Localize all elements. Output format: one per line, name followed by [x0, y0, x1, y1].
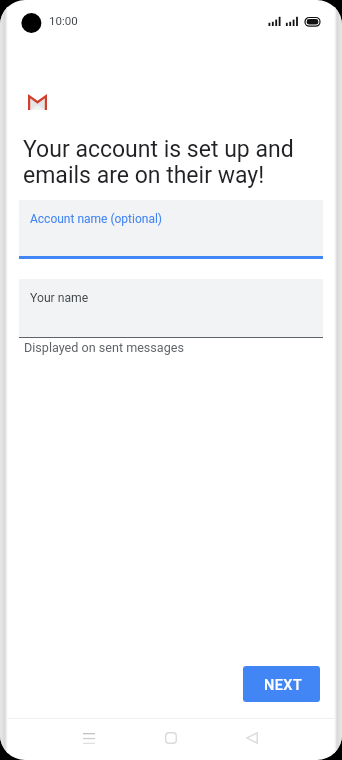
- button[interactable]: Home: [148, 716, 194, 760]
- staticText: Displayed on sent messages: [24, 340, 184, 355]
- button[interactable]: Recent apps: [66, 716, 112, 760]
- button[interactable]: Your name: [19, 279, 323, 337]
- staticText: Account name (optional): [30, 212, 163, 226]
- staticText: 10:00: [49, 14, 78, 27]
- button[interactable]: Account name (optional): [19, 200, 323, 256]
- button[interactable]: NEXT: [243, 666, 320, 702]
- button[interactable]: Back: [229, 716, 275, 760]
- staticText: NEXT: [264, 677, 303, 694]
- staticText: Your account is set up and emails are on…: [23, 136, 311, 189]
- staticText: Your name: [30, 291, 89, 305]
